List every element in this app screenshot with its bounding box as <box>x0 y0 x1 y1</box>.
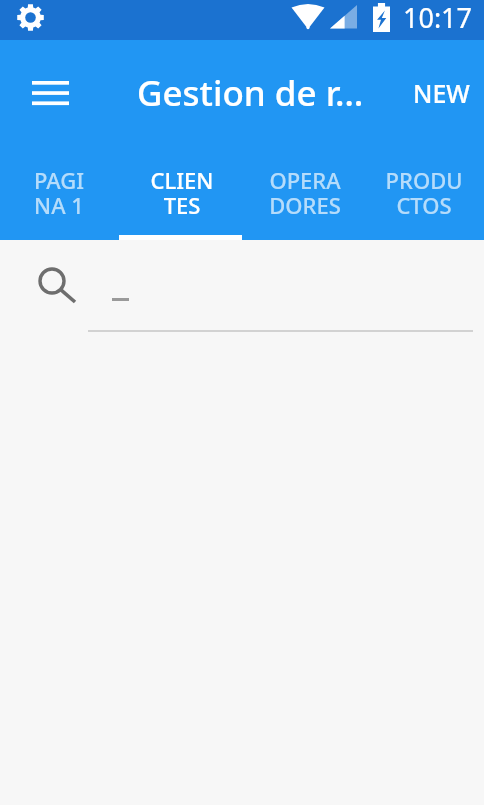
button[interactable]: CLIEN TES <box>120 145 243 240</box>
other: Settings <box>17 4 44 31</box>
button[interactable]: PAGI NA 1 <box>0 145 120 240</box>
staticText: CLIEN TES <box>132 165 232 221</box>
staticText: 10:17 <box>403 0 473 36</box>
button[interactable]: OPERA DORES <box>243 145 366 240</box>
button[interactable]: NEW <box>399 64 484 122</box>
staticText: NEW <box>413 76 470 110</box>
staticText: PAGI NA 1 <box>9 165 109 221</box>
staticText: Gestion de r… <box>137 69 364 117</box>
staticText: OPERA DORES <box>255 165 355 221</box>
button[interactable]: Search <box>36 265 78 307</box>
staticText: PRODU CTOS <box>374 165 474 221</box>
button[interactable]: Menu <box>14 44 86 116</box>
button[interactable]: PRODU CTOS <box>366 145 481 240</box>
